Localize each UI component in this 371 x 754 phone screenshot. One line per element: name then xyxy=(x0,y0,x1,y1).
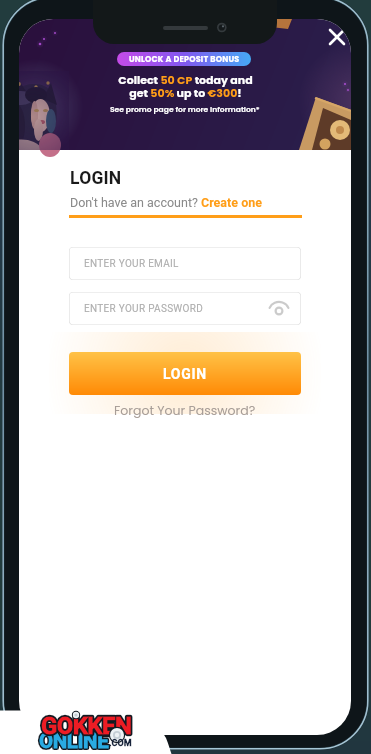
button[interactable]: ENTER YOUR PASSWORD xyxy=(69,292,301,325)
button[interactable]: Show password xyxy=(266,296,292,322)
button[interactable]: ENTER YOUR EMAIL xyxy=(69,247,301,280)
staticText: See promo page for more information* xyxy=(110,104,260,115)
staticText: UNLOCK A DEPOSIT BONUS xyxy=(129,54,240,65)
staticText: GOKKEN xyxy=(41,712,132,740)
staticText: .COM xyxy=(109,738,132,749)
button[interactable]: LOGIN xyxy=(69,352,301,395)
staticText: Collect 50 CP today and get 50% up to €3… xyxy=(118,72,253,100)
staticText: ENTER YOUR EMAIL xyxy=(84,258,179,270)
staticText: ONLINE xyxy=(39,729,109,753)
staticText: LOGIN xyxy=(70,168,122,189)
staticText: ENTER YOUR PASSWORD xyxy=(84,303,204,315)
staticText: GOKKEN xyxy=(41,712,132,740)
staticText: ONLINE xyxy=(39,729,109,753)
button[interactable]: Close xyxy=(325,25,349,49)
staticText: Don't have an account? Create one xyxy=(70,195,262,210)
staticText: LOGIN xyxy=(163,366,207,382)
staticText: Forgot Your Password? xyxy=(114,402,256,419)
button[interactable]: Forgot Your Password? xyxy=(114,402,256,419)
button[interactable]: UNLOCK A DEPOSIT BONUS xyxy=(117,52,251,66)
